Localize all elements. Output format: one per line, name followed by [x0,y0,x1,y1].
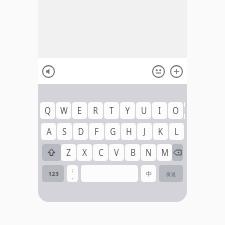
staticText: Q [44,105,51,116]
staticText: C [98,147,104,158]
button[interactable]: V [109,144,124,161]
button[interactable]: Emoji [152,65,165,78]
staticText: ; , [72,167,74,181]
button[interactable]: G [105,123,120,140]
staticText: 发送 [166,171,176,177]
staticText: A [46,126,52,137]
staticText: B [130,147,136,158]
button[interactable]: 中 [141,165,156,182]
button[interactable]: W [56,102,71,119]
button[interactable]: J [137,123,152,140]
staticText: J [143,126,146,137]
button[interactable]: Add attachment [170,65,183,78]
button[interactable]: R [88,102,103,119]
button[interactable]: Voice input [42,65,55,78]
staticText: U [141,105,147,116]
button[interactable]: H [121,123,136,140]
staticText: D [78,126,84,137]
staticText: I [158,105,161,116]
button[interactable]: I [152,102,167,119]
staticText: T [109,105,114,116]
staticText: 中 [146,170,152,178]
staticText: W [60,105,68,116]
staticText: R [93,105,98,116]
button[interactable]: U [136,102,151,119]
button[interactable]: A [41,123,56,140]
button[interactable]: M [157,144,172,161]
staticText: O [172,105,179,116]
staticText: P [184,105,185,116]
button[interactable]: Q [40,102,55,119]
staticText: V [114,147,119,158]
button[interactable]: 发送 [159,165,183,182]
button[interactable]: S [57,123,72,140]
button[interactable]: ; , [67,165,78,182]
button[interactable]: Y [120,102,135,119]
staticText: S [62,126,67,137]
staticText: N [145,147,152,158]
button[interactable]: K [153,123,168,140]
button[interactable]: C [93,144,108,161]
button[interactable]: D [73,123,88,140]
button[interactable]: T [104,102,119,119]
staticText: H [126,126,132,137]
staticText: M [161,147,169,158]
button[interactable]: X [77,144,92,161]
button[interactable]: Z [61,144,76,161]
button[interactable]: Backspace [172,144,183,161]
staticText: F [94,126,99,137]
button[interactable]: Shift [42,144,61,161]
staticText: K [158,126,163,137]
button[interactable]: O [168,102,183,119]
staticText: 123 [48,170,59,178]
button[interactable]: B [125,144,140,161]
staticText: Y [125,105,130,116]
staticText: G [110,126,116,137]
staticText: E [77,105,82,116]
button[interactable]: E [72,102,87,119]
button[interactable]: 123 [42,165,64,182]
staticText: X [82,147,87,158]
button[interactable]: N [141,144,156,161]
button[interactable]: L [169,123,184,140]
button[interactable]: P [184,102,185,119]
staticText: Z [66,147,71,158]
button[interactable]: F [89,123,104,140]
staticText: L [174,126,179,137]
